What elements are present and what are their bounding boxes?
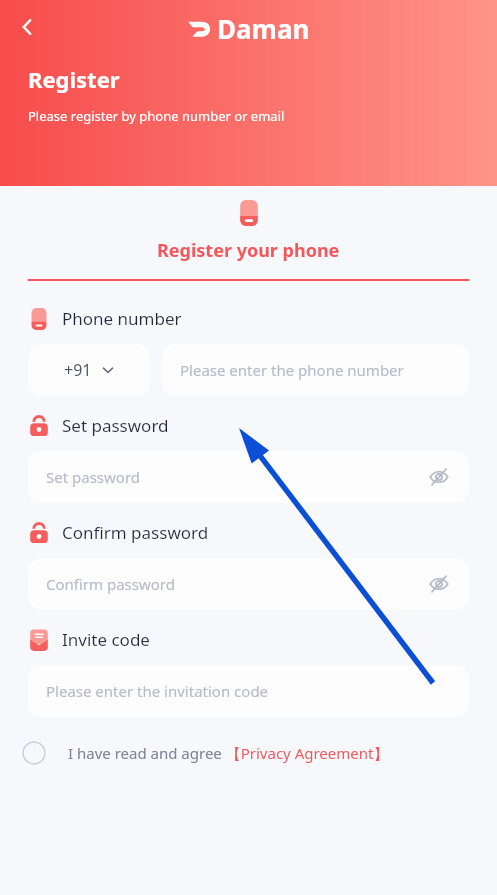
button[interactable]: Show password (425, 463, 453, 491)
button[interactable]: Back (9, 9, 45, 45)
button[interactable]: Please enter the invitation code (28, 665, 469, 717)
staticText: I have read and agree 【Privacy Agreement… (68, 743, 389, 763)
button[interactable]: Please enter the phone number (162, 344, 469, 396)
staticText: +91 (64, 359, 92, 381)
staticText: Register (28, 64, 120, 94)
staticText: Set password (46, 467, 141, 487)
button[interactable]: Confirm password (28, 558, 469, 610)
button[interactable]: +91 (28, 344, 150, 396)
staticText: Phone number (62, 307, 182, 330)
staticText: Please enter the invitation code (46, 681, 269, 701)
staticText: Daman (217, 11, 310, 46)
staticText: Please register by phone number or email (28, 107, 285, 125)
staticText: Invite code (62, 628, 150, 651)
staticText: Please enter the phone number (180, 360, 404, 380)
button[interactable]: Show password (425, 570, 453, 598)
staticText: Confirm password (46, 574, 175, 594)
button[interactable]: I have read and agree 【Privacy Agreement… (22, 741, 475, 765)
button[interactable]: Set password (28, 451, 469, 503)
staticText: Set password (62, 414, 169, 437)
staticText: Confirm password (62, 521, 209, 544)
staticText: Register your phone (157, 238, 340, 263)
